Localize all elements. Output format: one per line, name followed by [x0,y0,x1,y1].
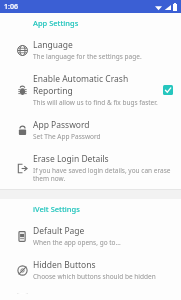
button[interactable]: App Password [0,113,181,147]
button[interactable]: Language [0,33,181,67]
staticText: The language for the settings page. [33,52,142,61]
staticText: 1:06 [4,2,18,12]
button[interactable]: Default Page [0,219,181,253]
button[interactable]: Enabled [163,85,173,95]
staticText: Choose which buttons should be hidden [33,272,156,281]
staticText: This will allow us to find & fix bugs fa… [33,98,158,107]
staticText: App Settings [33,18,79,28]
staticText: Hidden Buttons [33,259,96,271]
staticText: Set The App Password [33,132,101,141]
staticText: iVelt Settings [33,204,80,214]
staticText: If you have saved login details, you can… [33,166,173,183]
staticText: Default Page [33,225,85,237]
staticText: Enable Automatic Crash Reporting [33,73,159,97]
button[interactable]: Erase Login Details [0,147,181,189]
staticText: When the app opens, go to... [33,238,121,247]
button[interactable]: Hidden Buttons [0,253,181,287]
staticText: App Password [33,119,90,131]
button[interactable]: Crash reporting [0,67,181,113]
staticText: Language [33,39,73,51]
staticText: Erase Login Details [33,153,109,165]
